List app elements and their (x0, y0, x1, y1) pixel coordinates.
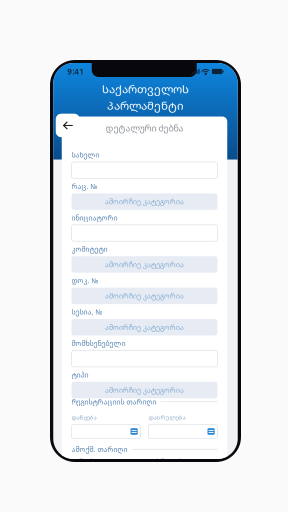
staticText: ამოირჩიე კატეგორია (105, 322, 184, 332)
staticText: ამოირჩიე კატეგორია (105, 291, 184, 300)
staticText: სახელი (71, 150, 99, 160)
staticText: მომხსენებელი (71, 339, 125, 348)
staticText: დასრულება (148, 413, 185, 421)
staticText: დაწყება (71, 456, 96, 464)
staticText: 9:41 (67, 66, 84, 77)
button[interactable]: ამოირჩიე კატეგორია (71, 256, 217, 273)
staticText: რეგისტრაციის თარიღი (71, 397, 156, 406)
staticText: რაც. № (71, 182, 97, 191)
button[interactable]: ამოირჩიე კატეგორია (71, 319, 217, 335)
staticText: ამოქმ. თარიღი (71, 445, 127, 454)
staticText: დეტალური ძებნა (105, 122, 183, 134)
button[interactable]: Back (56, 114, 80, 137)
staticText: პარლამენტი (107, 98, 184, 113)
staticText: კომიტეტი (71, 244, 107, 254)
staticText: დასრულება (148, 456, 185, 464)
staticText: სესია, № (71, 307, 102, 317)
button[interactable]: Pick date (148, 424, 217, 438)
staticText: საქართველოს (102, 81, 189, 97)
staticText: ინიციატორი (71, 213, 117, 222)
button[interactable]: ამოირჩიე კატეგორია (71, 288, 217, 304)
staticText: ამოირჩიე კატეგორია (105, 260, 184, 269)
button[interactable]: ამოირჩიე კატეგორია (71, 193, 217, 210)
staticText: ამოირჩიე კატეგორია (105, 385, 184, 395)
button[interactable]: Pick date (71, 424, 140, 438)
staticText: ამოირჩიე კატეგორია (105, 197, 184, 206)
staticText: ტიპი (71, 370, 88, 379)
button[interactable]: ამოირჩიე კატეგორია (71, 382, 217, 398)
staticText: დოკ. № (71, 276, 98, 285)
staticText: დაწყება (71, 413, 96, 421)
